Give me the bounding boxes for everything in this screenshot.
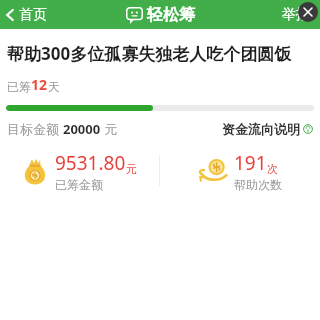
staticText: 元: [101, 120, 118, 138]
button[interactable]: Close: [298, 2, 318, 22]
staticText: 12: [31, 75, 48, 94]
staticText: 9531.80: [55, 150, 126, 176]
staticText: 举报: [282, 6, 310, 24]
staticText: 帮助300多位孤寡失独老人吃个团圆饭: [7, 42, 292, 65]
staticText: 已筹: [7, 79, 31, 94]
staticText: 191: [234, 150, 267, 176]
staticText: 目标金额: [7, 120, 63, 138]
staticText: 元: [126, 162, 137, 176]
button[interactable]: 资金流向说明: [222, 120, 313, 138]
staticText: 帮助次数: [234, 177, 282, 192]
staticText: 次: [267, 162, 278, 176]
staticText: 首页: [19, 6, 47, 24]
button[interactable]: 举报: [280, 4, 312, 26]
staticText: 已筹金额: [55, 177, 103, 192]
button[interactable]: 首页: [0, 4, 55, 26]
staticText: 轻松筹: [147, 5, 195, 25]
staticText: 资金流向说明: [222, 121, 300, 137]
staticText: 天: [48, 79, 60, 94]
staticText: 20000: [63, 120, 101, 138]
